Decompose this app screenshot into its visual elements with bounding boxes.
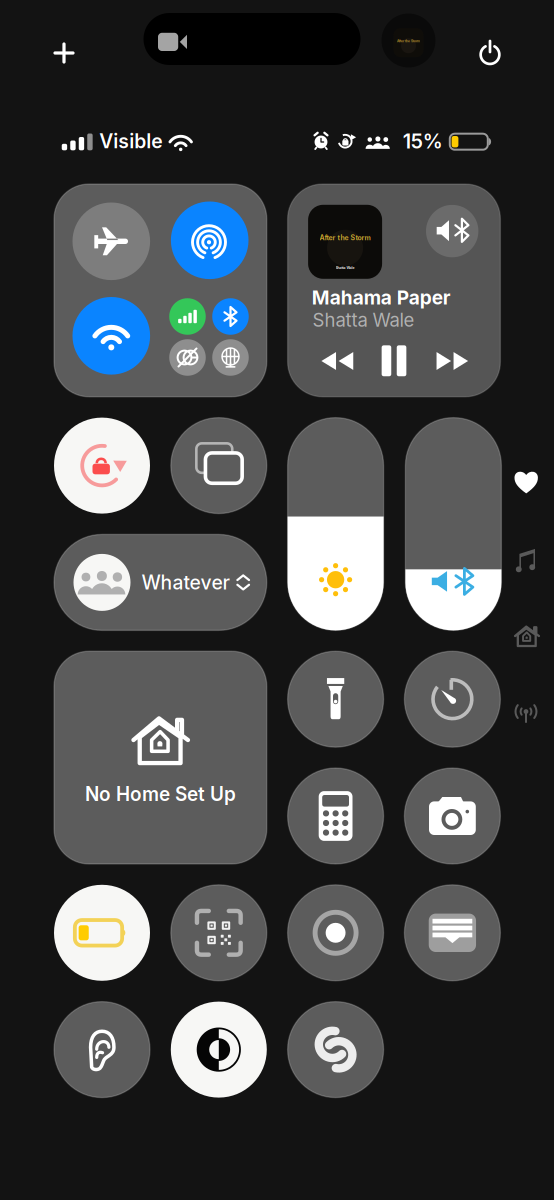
staticText: Shatta Wale	[312, 309, 414, 331]
button[interactable]: Flashlight	[288, 651, 384, 747]
button[interactable]: Now Playing	[502, 535, 549, 586]
button[interactable]: Rotation Lock	[54, 418, 150, 514]
button[interactable]: Add a control	[39, 28, 89, 78]
button[interactable]: Favorites	[500, 457, 552, 507]
button[interactable]: Home	[501, 611, 553, 661]
button[interactable]: AirDrop	[171, 201, 248, 279]
button[interactable]: Airplane Mode	[72, 202, 150, 280]
staticText: After the Storm	[320, 234, 371, 242]
button[interactable]: Screen Mirroring	[171, 418, 267, 514]
button[interactable]: Bluetooth	[212, 298, 249, 335]
staticText: 15%	[403, 129, 443, 153]
button[interactable]: Previous	[307, 338, 367, 384]
staticText: Shatta Wale	[336, 266, 355, 270]
button[interactable]: Pause	[368, 331, 420, 390]
staticText: After the Storm	[397, 39, 420, 43]
button[interactable]: VPN	[169, 339, 206, 376]
button[interactable]: Calculator	[288, 768, 384, 864]
button[interactable]: Whatever	[54, 534, 267, 630]
button[interactable]	[288, 418, 384, 630]
button[interactable]: Satellite	[212, 339, 249, 376]
button[interactable]: No Home Set Up	[54, 651, 267, 864]
button[interactable]: Hearing	[54, 1002, 150, 1098]
button[interactable]: Wallet	[404, 885, 500, 981]
button[interactable]: Power	[465, 24, 515, 79]
button[interactable]	[405, 418, 501, 630]
button[interactable]: Cellular Data	[169, 298, 206, 335]
button[interactable]: Low Power Mode	[54, 885, 150, 981]
button[interactable]: Next	[423, 338, 482, 384]
button[interactable]: Code Scanner	[171, 885, 267, 981]
button[interactable]: Output Device	[426, 205, 478, 257]
button[interactable]: Timer	[404, 651, 500, 747]
staticText: Whatever	[142, 571, 230, 594]
button[interactable]: Screen Recording	[288, 885, 384, 981]
button[interactable]: Camera	[404, 768, 500, 864]
button[interactable]: Wi-Fi	[72, 297, 150, 375]
button[interactable]: Music Recognition	[288, 1002, 384, 1098]
staticText: Mahama Paper	[312, 286, 451, 309]
button[interactable]: Dark Mode	[171, 1002, 267, 1098]
staticText: Visible	[99, 130, 162, 153]
button[interactable]: Connectivity	[501, 690, 551, 736]
staticText: No Home Set Up	[85, 783, 236, 806]
